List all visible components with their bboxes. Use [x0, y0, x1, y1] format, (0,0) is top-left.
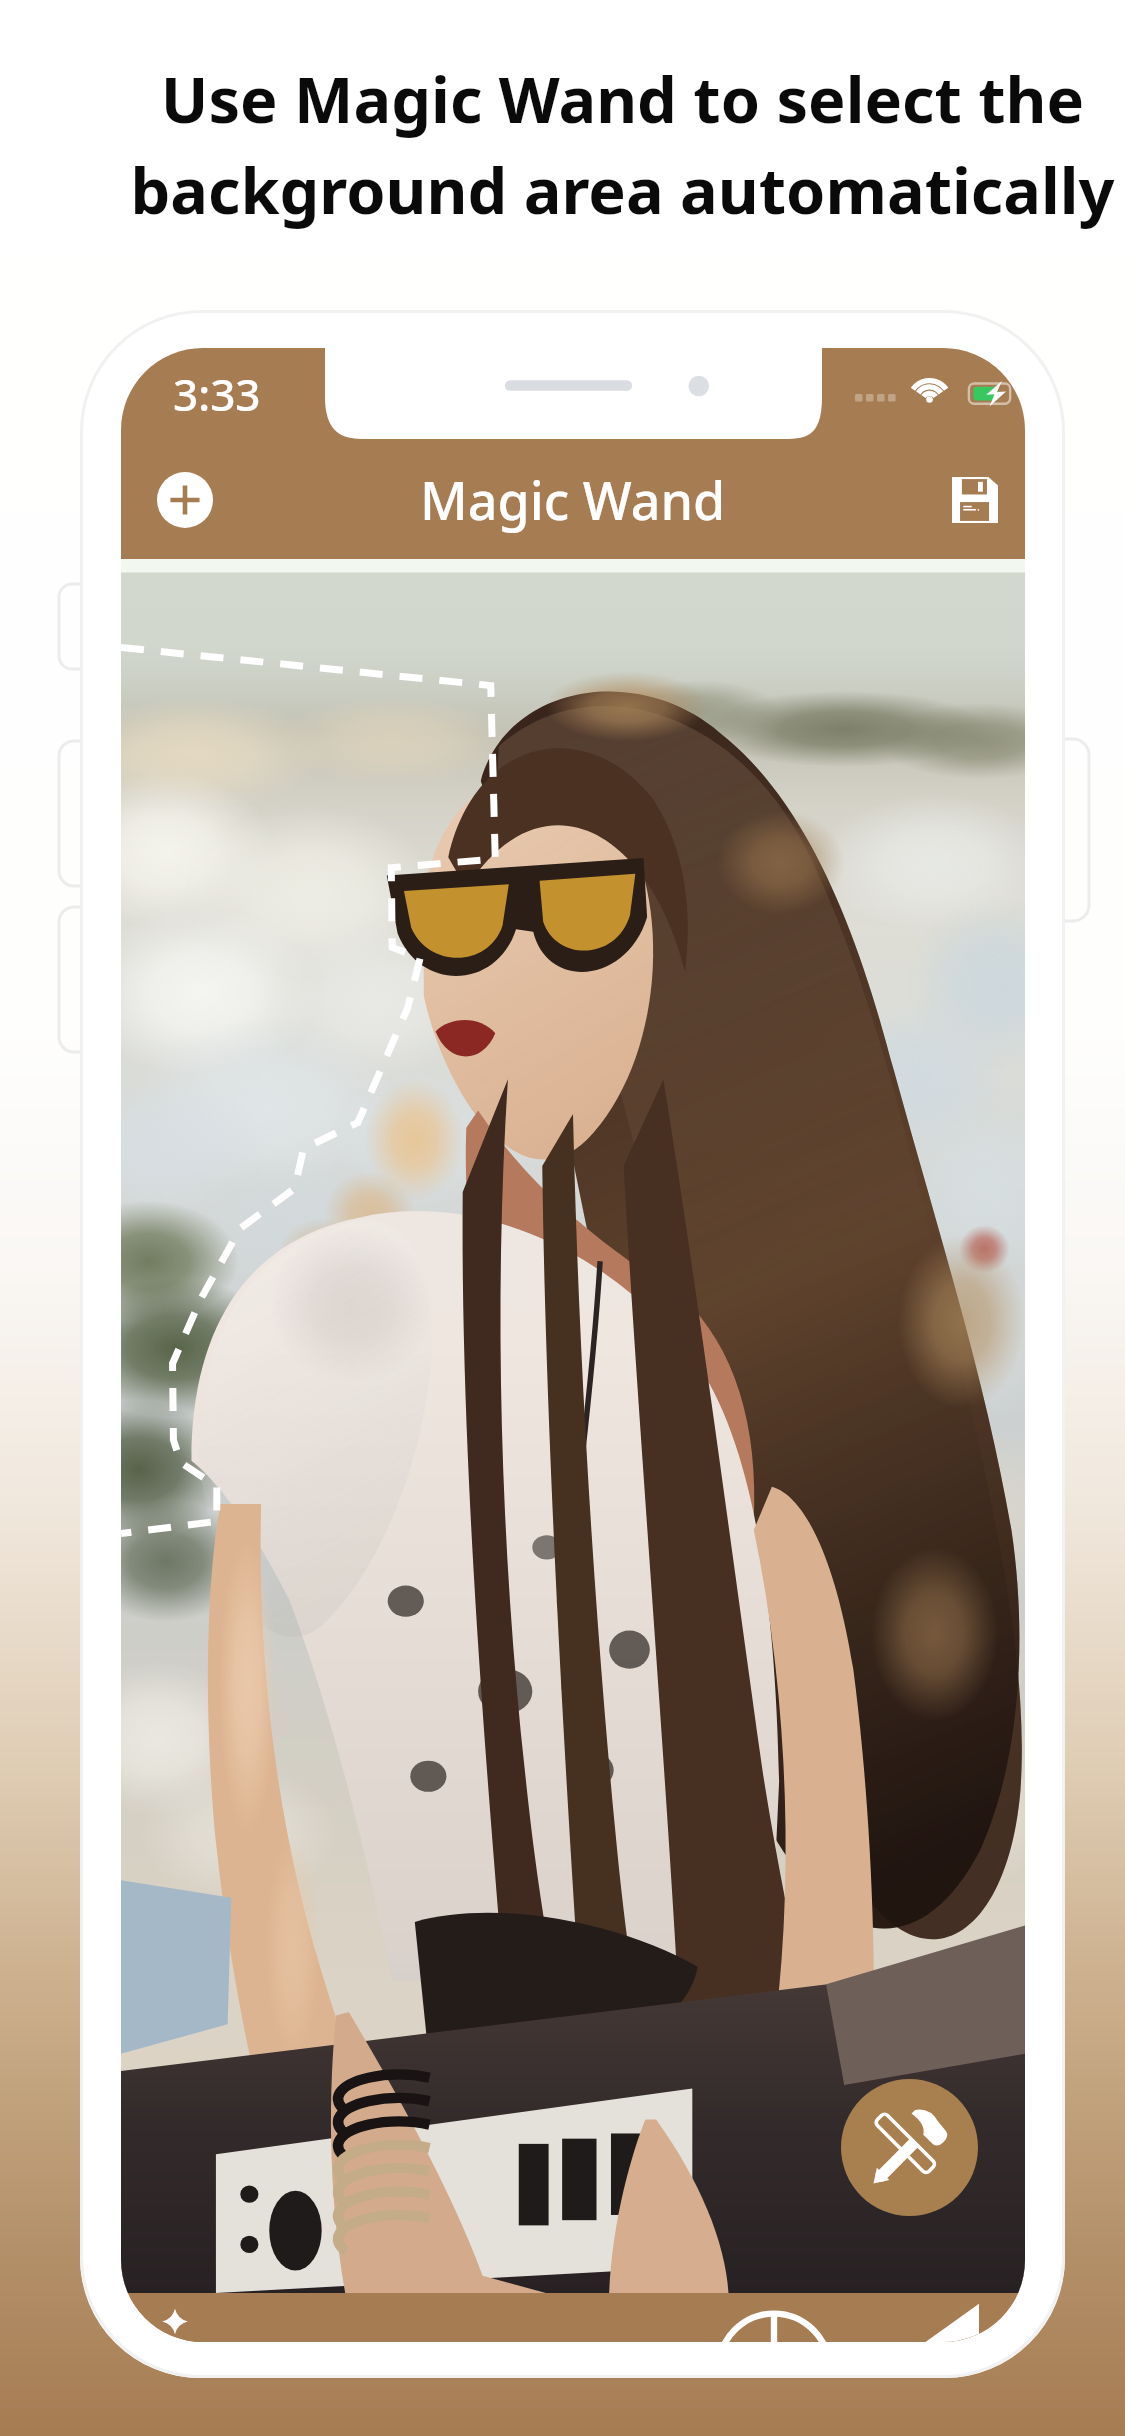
button[interactable]: Add [157, 472, 213, 528]
staticText: Magic Wand [420, 464, 726, 535]
button[interactable]: Adjust [709, 2293, 839, 2342]
button[interactable]: Crop [881, 2293, 1025, 2342]
button[interactable]: Save [952, 477, 998, 523]
staticText: Use Magic Wand to select the background … [76, 56, 1125, 233]
staticText: 3:33 [173, 364, 261, 424]
button[interactable]: Effects [121, 2293, 231, 2342]
button[interactable]: Tools [841, 2079, 978, 2216]
